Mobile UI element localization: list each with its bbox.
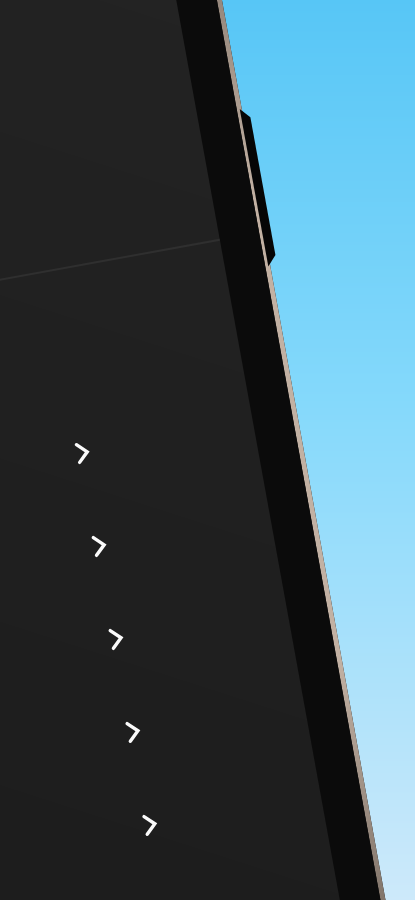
button[interactable]: Phone showing dark filter list screen <box>0 0 415 900</box>
